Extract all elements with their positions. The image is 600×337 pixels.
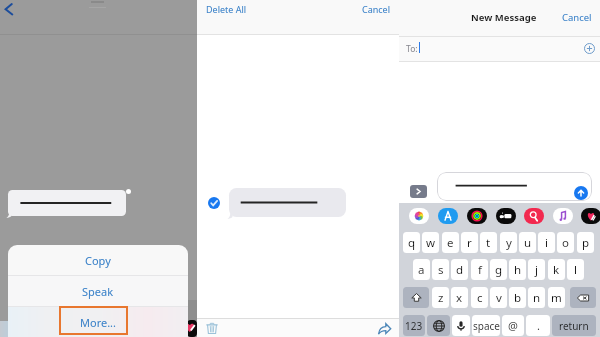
button[interactable]: App shortcut 1	[409, 208, 429, 224]
button[interactable]: Delete All	[206, 3, 247, 15]
button[interactable]: v	[490, 287, 507, 308]
button[interactable]: @	[502, 315, 524, 336]
button[interactable]: space	[472, 315, 500, 336]
staticText: l	[574, 262, 577, 278]
button[interactable]: Cancel	[362, 3, 391, 15]
button[interactable]: m	[548, 287, 565, 308]
button[interactable]: Backspace	[570, 287, 596, 308]
staticText: d	[456, 262, 464, 278]
button[interactable]: App shortcut 3	[467, 208, 487, 224]
button[interactable]: e	[442, 232, 459, 253]
button[interactable]: Add contact	[583, 42, 595, 54]
button[interactable]: Send	[574, 186, 588, 200]
staticText: x	[456, 290, 463, 306]
staticText: p	[582, 235, 590, 251]
staticText: u	[524, 235, 532, 251]
button[interactable]: c	[471, 287, 488, 308]
staticText: space	[473, 319, 500, 333]
staticText: b	[514, 290, 522, 306]
button[interactable]: w	[422, 232, 439, 253]
staticText: return	[559, 319, 589, 333]
button[interactable]: x	[451, 287, 468, 308]
button[interactable]: h	[509, 259, 526, 280]
button[interactable]: d	[451, 259, 468, 280]
staticText: More...	[80, 315, 117, 330]
button[interactable]: Delete	[204, 320, 220, 336]
staticText: c	[477, 290, 483, 306]
button[interactable]: Copy	[8, 245, 188, 275]
staticText: Delete All	[206, 3, 247, 15]
button[interactable]: .	[526, 315, 550, 336]
button[interactable]: Dictate	[452, 315, 470, 336]
staticText: 123	[405, 319, 423, 333]
button[interactable]: l	[567, 259, 584, 280]
staticText: j	[535, 262, 538, 278]
staticText: a	[418, 262, 425, 278]
button[interactable]: z	[432, 287, 449, 308]
button[interactable]: q	[403, 232, 420, 253]
button[interactable]: Back	[0, 0, 20, 20]
staticText: w	[426, 235, 436, 251]
staticText: z	[438, 290, 444, 306]
button[interactable]: App shortcut 6	[553, 208, 573, 224]
staticText: o	[562, 235, 569, 251]
staticText: Cancel	[562, 11, 592, 24]
button[interactable]: App shortcut 7	[581, 208, 600, 224]
button[interactable]: g	[490, 259, 507, 280]
button[interactable]: t	[480, 232, 497, 253]
button[interactable]: Forward	[376, 320, 392, 336]
staticText: New Message	[471, 11, 537, 24]
button[interactable]: u	[519, 232, 536, 253]
button[interactable]: i	[538, 232, 555, 253]
staticText: Copy	[85, 253, 111, 268]
button[interactable]: b	[509, 287, 526, 308]
staticText: v	[496, 290, 502, 306]
staticText: r	[467, 235, 472, 251]
staticText: n	[533, 290, 541, 306]
staticText: h	[514, 262, 522, 278]
staticText: f	[478, 262, 482, 278]
staticText: k	[553, 262, 560, 278]
staticText: t	[486, 235, 491, 251]
button[interactable]: Cancel	[562, 11, 592, 24]
button[interactable]: App shortcut 2	[438, 208, 458, 224]
button[interactable]: r	[461, 232, 478, 253]
button[interactable]: Shift	[403, 287, 429, 308]
staticText: q	[408, 235, 416, 251]
staticText: Cancel	[362, 3, 391, 15]
button[interactable]: s	[432, 259, 449, 280]
button[interactable]: 123	[403, 315, 425, 336]
button[interactable]: n	[528, 287, 545, 308]
button[interactable]: y	[500, 232, 517, 253]
staticText: s	[438, 262, 444, 278]
button[interactable]: p	[577, 232, 594, 253]
button[interactable]: Speak	[8, 276, 188, 306]
staticText: .	[537, 318, 540, 333]
button[interactable]: More...	[8, 307, 188, 337]
staticText: y	[506, 235, 512, 251]
button[interactable]: o	[557, 232, 574, 253]
button[interactable]: k	[548, 259, 565, 280]
staticText: i	[545, 235, 548, 251]
button[interactable]: j	[528, 259, 545, 280]
button[interactable]: Switch keyboard	[427, 315, 450, 336]
staticText: m	[551, 290, 562, 306]
staticText: To:	[406, 43, 418, 55]
staticText: @	[508, 318, 518, 333]
staticText: g	[495, 262, 503, 278]
button[interactable]: Show apps	[410, 185, 427, 198]
staticText: Speak	[82, 284, 114, 299]
button[interactable]: App shortcut 4	[496, 208, 516, 224]
button[interactable]: a	[413, 259, 430, 280]
button[interactable]: f	[471, 259, 488, 280]
button[interactable]: return	[552, 315, 596, 336]
staticText: e	[447, 235, 454, 251]
button[interactable]: App shortcut 5	[524, 208, 544, 224]
